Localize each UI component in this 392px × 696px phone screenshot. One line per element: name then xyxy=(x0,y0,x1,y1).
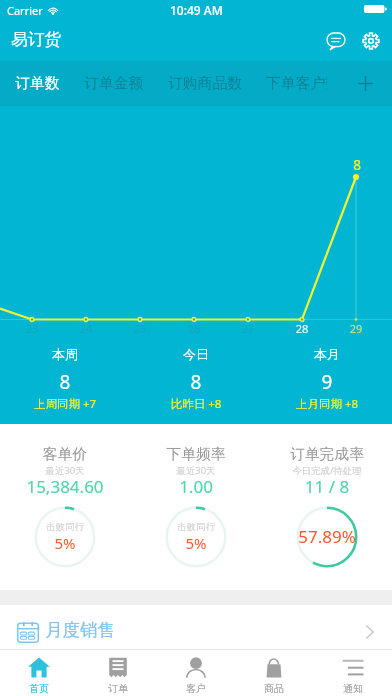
staticText: 上月同期 +8 xyxy=(227,396,392,412)
staticText: 15,384.60 xyxy=(0,475,165,498)
button[interactable] xyxy=(261,337,391,417)
staticText: 通知 xyxy=(253,682,392,695)
staticText: 26 xyxy=(94,321,294,336)
staticText: 下单客户数 xyxy=(266,74,327,93)
button[interactable] xyxy=(0,337,130,417)
staticText: 月度销售 xyxy=(45,619,115,641)
staticText: 客单价 xyxy=(0,445,165,464)
staticText: 28 xyxy=(202,321,392,336)
staticText: 9 xyxy=(227,369,392,395)
button[interactable] xyxy=(131,337,261,417)
staticText: 8 xyxy=(96,369,296,395)
button[interactable] xyxy=(235,650,313,696)
staticText: 下单频率 xyxy=(96,445,296,464)
button[interactable]: Settings xyxy=(354,24,388,58)
button[interactable]: 下单客户数 xyxy=(254,62,336,105)
staticText: 订单数 xyxy=(15,74,60,93)
staticText: 首页 xyxy=(0,682,139,695)
staticText: 订单金额 xyxy=(84,74,144,93)
staticText: 10:49 AM xyxy=(170,2,223,18)
staticText: 击败同行 xyxy=(96,521,296,533)
staticText: 上周同期 +7 xyxy=(0,396,165,412)
staticText: 23 xyxy=(0,321,132,336)
staticText: 商品 xyxy=(174,682,374,695)
staticText: 29 xyxy=(256,321,392,336)
staticText: 本月 xyxy=(227,346,392,362)
button[interactable]: Add xyxy=(339,61,392,106)
staticText: 5% xyxy=(0,533,165,553)
staticText: 客户 xyxy=(96,682,296,695)
button[interactable]: Messages xyxy=(319,24,353,58)
staticText: 今日完成/待处理 xyxy=(227,464,392,477)
button[interactable]: 订购商品数 xyxy=(156,62,254,105)
staticText: 订购商品数 xyxy=(168,74,242,93)
button[interactable] xyxy=(157,650,235,696)
staticText: 击败同行 xyxy=(0,521,165,533)
staticText: 订单完成率 xyxy=(227,445,392,464)
staticText: 8 xyxy=(0,369,165,395)
staticText: 订单 xyxy=(18,682,218,695)
staticText: 1.00 xyxy=(96,475,296,498)
staticText: 最近30天 xyxy=(96,464,296,477)
button[interactable] xyxy=(131,424,261,590)
staticText: 5% xyxy=(96,533,296,553)
button[interactable]: 订单金额 xyxy=(72,62,156,105)
staticText: 8 xyxy=(257,156,392,174)
staticText: 57.89% xyxy=(227,525,392,548)
button[interactable] xyxy=(0,650,78,696)
button[interactable] xyxy=(314,650,392,696)
staticText: 24 xyxy=(0,321,186,336)
staticText: 最近30天 xyxy=(0,464,165,477)
staticText: Carrier xyxy=(7,3,43,18)
staticText: 11 / 8 xyxy=(227,475,392,498)
button[interactable] xyxy=(0,424,130,590)
staticText: 易订货 xyxy=(11,29,62,50)
staticText: 比昨日 +8 xyxy=(96,396,296,412)
button[interactable] xyxy=(261,424,391,590)
staticText: 本周 xyxy=(0,346,165,362)
button[interactable] xyxy=(78,650,156,696)
button[interactable]: 订单数 xyxy=(3,62,72,105)
staticText: 今日 xyxy=(96,346,296,362)
staticText: 27 xyxy=(148,321,348,336)
button[interactable] xyxy=(0,605,392,649)
staticText: 25 xyxy=(40,321,240,336)
